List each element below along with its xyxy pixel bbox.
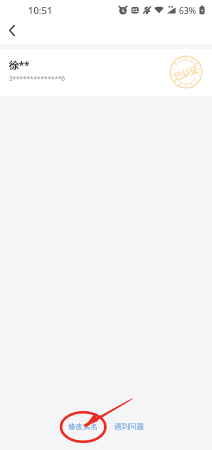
staticText: 修改实名 [68, 422, 98, 431]
button[interactable]: Back [0, 19, 23, 41]
staticText: 已认证 [173, 64, 200, 83]
button[interactable]: 遇到问题 [106, 414, 152, 439]
staticText: 63% [179, 5, 196, 17]
staticText: 10:51 [28, 4, 53, 17]
staticText: 遇到问题 [114, 422, 144, 431]
staticText: 徐** [9, 58, 30, 72]
button[interactable]: 修改实名 [60, 414, 106, 439]
staticText: 3**************6 [9, 74, 65, 83]
